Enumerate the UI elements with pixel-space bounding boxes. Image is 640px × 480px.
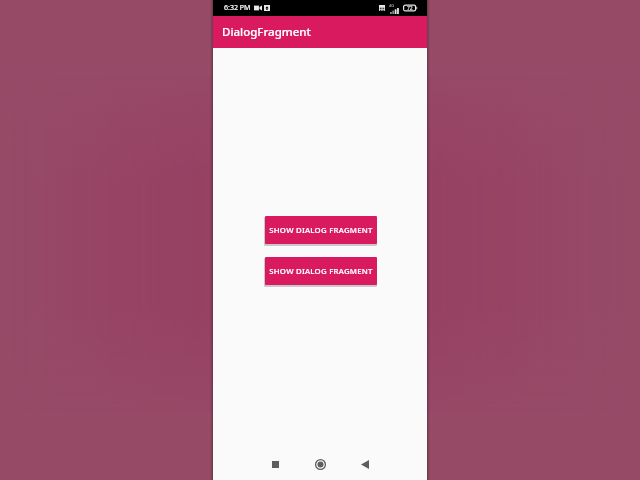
button[interactable]: SHOW DIALOG FRAGMENT <box>265 216 377 244</box>
staticText: SHOW DIALOG FRAGMENT <box>269 225 373 236</box>
button[interactable]: DialogFragment <box>213 16 427 48</box>
button[interactable]: Back <box>355 454 375 474</box>
staticText: SHOW DIALOG FRAGMENT <box>269 266 373 277</box>
button[interactable]: SHOW DIALOG FRAGMENT <box>265 257 377 285</box>
staticText: DialogFragment <box>222 24 311 40</box>
button[interactable]: Home <box>310 454 330 474</box>
button[interactable]: Recent apps <box>265 454 285 474</box>
staticText: 72 <box>407 5 413 12</box>
staticText: 6:32 PM <box>224 3 251 13</box>
staticText: 4G <box>389 3 395 8</box>
